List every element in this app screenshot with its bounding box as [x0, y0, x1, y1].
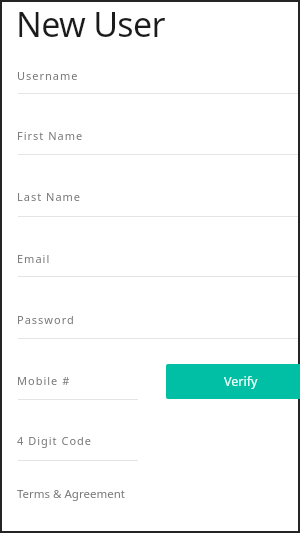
staticText: Terms & Agreement — [17, 486, 125, 502]
button[interactable]: Verify — [166, 364, 300, 399]
staticText: Last Name — [17, 189, 82, 204]
staticText: Password — [17, 312, 75, 327]
staticText: Verify — [224, 373, 258, 390]
button[interactable]: Username — [2, 63, 298, 107]
staticText: Username — [17, 68, 79, 83]
staticText: Mobile # — [17, 373, 71, 388]
button[interactable]: Last Name — [2, 186, 298, 230]
button[interactable]: Mobile # — [2, 369, 162, 413]
staticText: Email — [17, 251, 51, 266]
button[interactable]: First Name — [2, 124, 298, 168]
button[interactable]: Email — [2, 246, 298, 290]
button[interactable]: 4 Digit Code — [2, 430, 162, 474]
staticText: New User — [16, 1, 165, 47]
button[interactable]: Terms & Agreement — [2, 483, 298, 527]
button[interactable]: Password — [2, 308, 298, 352]
staticText: 4 Digit Code — [17, 433, 93, 448]
staticText: First Name — [17, 128, 84, 143]
